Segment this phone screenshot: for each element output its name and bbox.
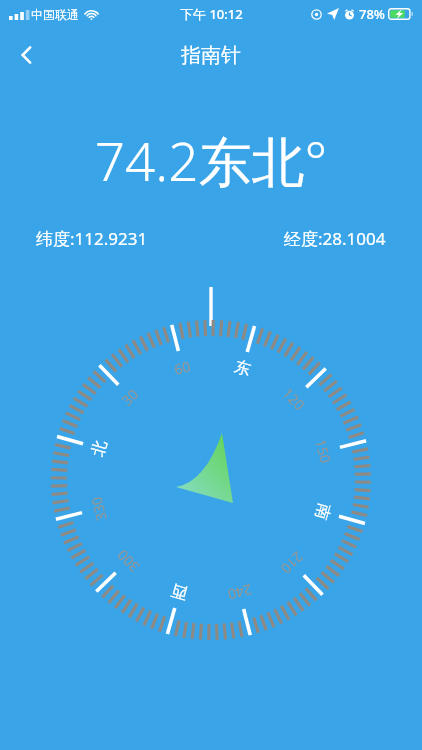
staticText: 下午 10:12 <box>180 5 243 23</box>
staticText: 中国联通 <box>31 7 79 22</box>
staticText: 74.2东北° <box>0 124 422 196</box>
button[interactable]: 返回 <box>4 32 50 78</box>
staticText: 经度:28.1004 <box>284 227 386 250</box>
staticText: 78% <box>359 5 385 23</box>
staticText: 指南针 <box>181 43 241 68</box>
staticText: 纬度:112.9231 <box>36 227 148 250</box>
